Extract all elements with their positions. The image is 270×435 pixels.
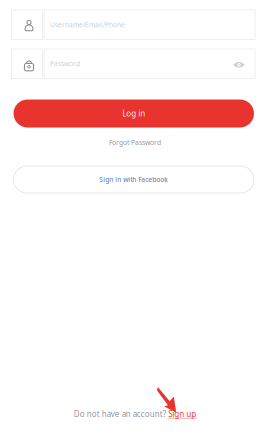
staticText: Do not have an account? (74, 409, 166, 419)
staticText: Sign in with Facebook (99, 175, 168, 184)
staticText: Log in (122, 108, 145, 119)
button[interactable]: Username/Email/Phone (11, 10, 255, 39)
button[interactable]: Sign up (168, 409, 196, 419)
button[interactable]: Show password (231, 54, 247, 74)
button[interactable]: Log in (13, 99, 254, 127)
staticText: Sign up (168, 409, 196, 419)
staticText: Forgot Password (109, 138, 161, 147)
staticText: Username/Email/Phone (50, 20, 125, 29)
button[interactable]: Sign in with Facebook (13, 166, 254, 193)
button[interactable]: Forgot Password (95, 136, 175, 148)
button[interactable]: Password (11, 49, 255, 78)
staticText: Password (50, 59, 80, 68)
